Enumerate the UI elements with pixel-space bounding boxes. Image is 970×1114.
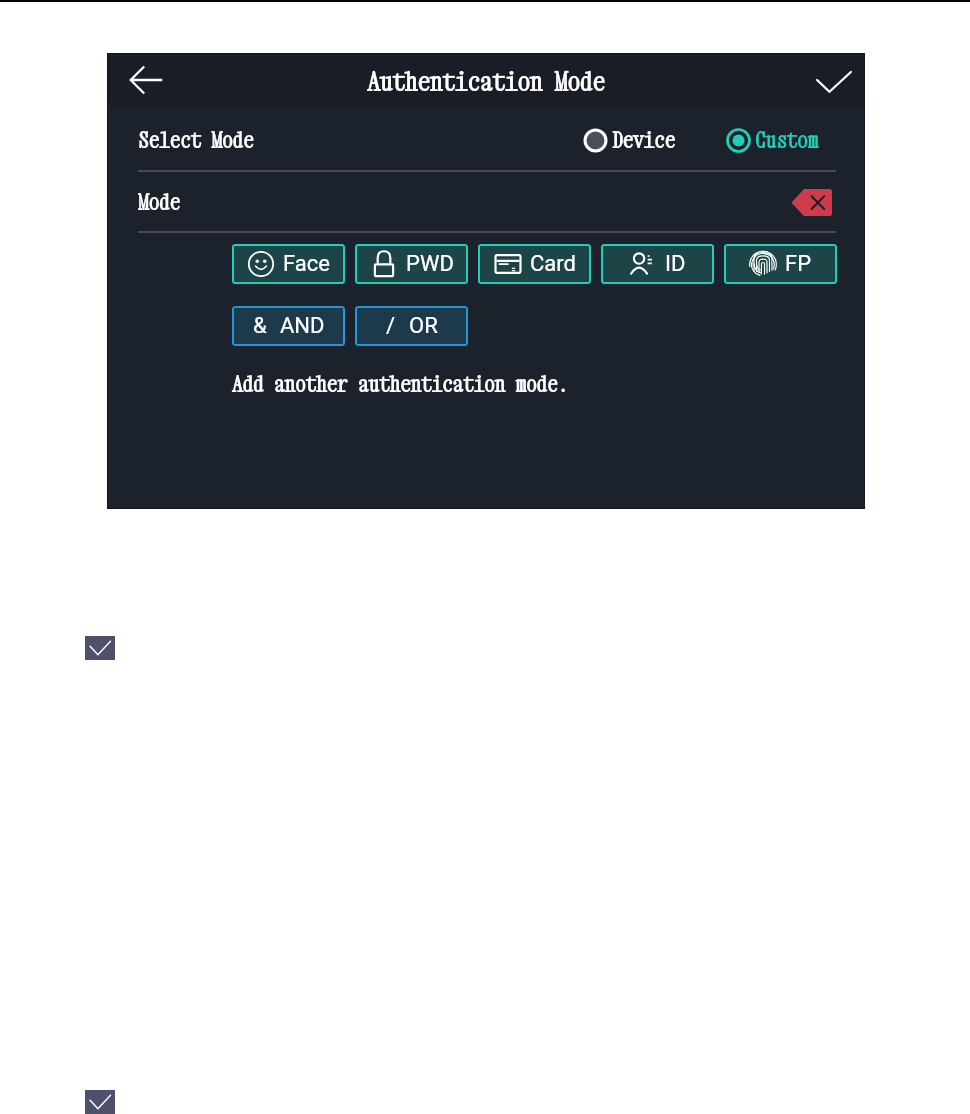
staticText: /: [386, 313, 396, 339]
staticText: Face: [283, 251, 330, 277]
staticText: Device: [612, 128, 675, 153]
button[interactable]: ID: [601, 244, 714, 284]
staticText: Select Mode: [138, 128, 254, 153]
staticText: &: [253, 313, 267, 339]
button[interactable]: PWD: [355, 244, 468, 284]
staticText: ID: [665, 251, 686, 277]
staticText: OR: [409, 313, 438, 339]
button[interactable]: /: [355, 306, 468, 346]
button[interactable]: Face: [232, 244, 345, 284]
staticText: FP: [785, 251, 812, 277]
button[interactable]: Confirm: [812, 58, 856, 102]
staticText: Custom: [755, 128, 818, 153]
button[interactable]: Back: [126, 58, 170, 102]
button[interactable]: Device: [583, 128, 675, 153]
staticText: Mode: [138, 190, 180, 215]
staticText: Authentication Mode: [367, 67, 605, 97]
button[interactable]: Card: [478, 244, 591, 284]
staticText: Add another authentication mode.: [232, 372, 568, 397]
button[interactable]: FP: [724, 244, 837, 284]
staticText: PWD: [406, 251, 454, 277]
staticText: Card: [530, 251, 576, 277]
button[interactable]: Custom: [726, 128, 818, 153]
staticText: AND: [280, 313, 325, 339]
button[interactable]: &: [232, 306, 345, 346]
button[interactable]: Delete: [791, 189, 832, 216]
